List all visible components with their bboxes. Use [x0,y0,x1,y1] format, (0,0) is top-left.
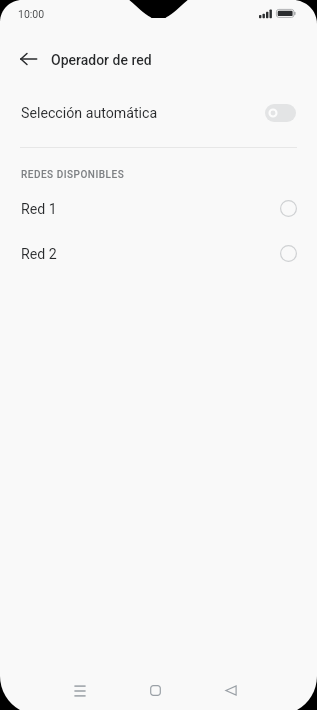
staticText: Selección automática [21,105,158,122]
button[interactable]: Selección automática [0,91,317,134]
button[interactable]: Back [209,668,253,710]
button[interactable]: Red 1 [0,186,317,231]
staticText: REDES DISPONIBLES [21,169,125,181]
staticText: Operador de red [51,52,152,68]
button[interactable]: Red 2 [0,231,317,276]
button[interactable]: Home [133,668,177,710]
button[interactable]: Back [12,43,44,75]
button[interactable]: Recent apps [58,669,102,710]
staticText: Red 2 [21,246,57,263]
staticText: Red 1 [21,201,57,218]
staticText: 10:00 [18,8,45,20]
